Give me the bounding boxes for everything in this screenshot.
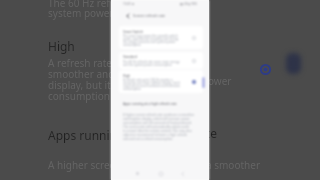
staticText: smoother and <box>48 67 115 81</box>
staticText: Apps running at a high refresh rate <box>123 102 177 106</box>
staticText: High <box>48 38 75 54</box>
staticText: A refresh rate up to 120 Hz creates a sm… <box>123 78 181 91</box>
staticText: consumption <box>48 89 110 103</box>
staticText: Smart Switch <box>123 30 143 34</box>
button[interactable]: Recent apps <box>133 169 142 178</box>
staticText: A higher scree <box>48 158 116 172</box>
staticText: ▮▮ 4G ▮ 96% <box>180 2 198 6</box>
staticText: Standard <box>123 55 137 59</box>
staticText: a smoother <box>206 158 261 172</box>
button[interactable]: High <box>119 70 203 93</box>
staticText: The 60 Hz refresh rate saves more energy… <box>123 60 180 67</box>
staticText: A higher screen refresh rate produces a … <box>123 113 195 141</box>
staticText: The smart app opens the smooth switch mo… <box>123 34 179 47</box>
staticText: A refresh rate <box>48 56 112 70</box>
button[interactable]: Smart Switch <box>119 26 203 49</box>
staticText: 10:45 <box>123 2 131 6</box>
staticText: High <box>123 74 131 78</box>
staticText: display, but it <box>48 78 111 92</box>
staticText: The 60 Hz ref <box>48 0 110 10</box>
staticText: Apps running <box>48 127 125 143</box>
button[interactable]: Home <box>156 169 165 178</box>
staticText: system power <box>48 6 114 20</box>
button[interactable]: Standard <box>119 52 203 69</box>
button[interactable]: Back <box>124 12 132 20</box>
staticText: ower <box>208 74 232 88</box>
staticText: Screen refresh rate <box>133 13 166 18</box>
staticText: te <box>206 125 218 141</box>
